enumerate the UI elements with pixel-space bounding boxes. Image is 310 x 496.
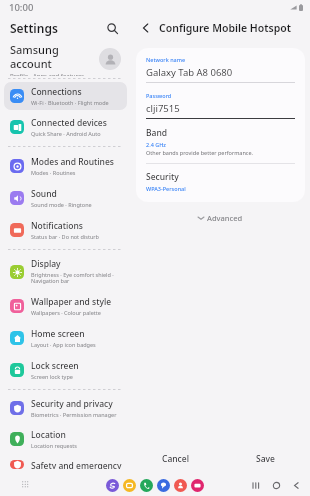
staticText: Modes and Routines: [31, 156, 114, 168]
staticText: Configure Mobile Hotspot: [159, 21, 292, 35]
staticText: Settings: [10, 20, 58, 36]
button[interactable]: Wallpaper and style: [4, 291, 127, 321]
staticText: Layout · App icon badges: [31, 341, 96, 348]
button[interactable]: camera: [191, 479, 204, 492]
button[interactable]: phone: [140, 479, 153, 492]
button[interactable]: files: [123, 479, 136, 492]
staticText: Location: [31, 429, 66, 441]
staticText: Safety and emergency: [31, 460, 122, 469]
button[interactable]: Search: [103, 19, 121, 37]
staticText: Home screen: [31, 328, 85, 340]
staticText: Other bands provide better performance.: [146, 149, 254, 156]
staticText: Wi-Fi · Bluetooth · Flight mode: [31, 99, 109, 106]
staticText: Brightness · Eye comfort shield · Naviga…: [31, 271, 123, 285]
button[interactable]: Back: [290, 479, 302, 491]
staticText: Quick Share · Android Auto: [31, 130, 101, 137]
staticText: Connected devices: [31, 117, 107, 129]
button[interactable]: Back: [137, 19, 155, 37]
button[interactable]: Security and privacy: [4, 394, 127, 422]
staticText: WPA3-Personal: [146, 185, 186, 192]
staticText: Location requests: [31, 442, 77, 449]
button[interactable]: internet: [106, 479, 119, 492]
button[interactable]: Advanced: [131, 210, 310, 226]
staticText: 10:00: [9, 1, 34, 14]
staticText: Wallpaper and style: [31, 296, 112, 308]
staticText: Galaxy Tab A8 0680: [146, 66, 233, 79]
staticText: Security and privacy: [31, 398, 113, 410]
button[interactable]: Sound: [4, 183, 127, 213]
staticText: Wallpapers · Colour palette: [31, 309, 101, 316]
button[interactable]: Cancel: [131, 444, 220, 474]
staticText: Cancel: [162, 453, 189, 465]
staticText: Save: [256, 453, 275, 465]
button[interactable]: Modes and Routines: [4, 151, 127, 181]
button[interactable]: Notifications: [4, 215, 127, 245]
staticText: Notifications: [31, 220, 83, 232]
staticText: Sound mode · Ringtone: [31, 201, 92, 208]
staticText: Display: [31, 258, 61, 270]
button[interactable]: Band: [146, 127, 295, 156]
staticText: Password: [146, 92, 172, 99]
staticText: Lock screen: [31, 360, 79, 372]
staticText: Sound: [31, 188, 57, 200]
staticText: Advanced: [207, 213, 243, 223]
button[interactable]: Lock screen: [4, 355, 127, 385]
staticText: Connections: [31, 86, 82, 98]
button[interactable]: Recents: [250, 479, 262, 491]
button[interactable]: Home screen: [4, 323, 127, 353]
staticText: Screen lock type: [31, 373, 73, 380]
button[interactable]: Home: [270, 479, 282, 491]
button[interactable]: Security: [146, 171, 295, 192]
button[interactable]: Display: [4, 254, 127, 289]
staticText: Network name: [146, 56, 186, 63]
staticText: Biometrics · Permission manager: [31, 411, 117, 418]
staticText: clji7515: [146, 102, 180, 115]
button[interactable]: Apps: [18, 477, 34, 493]
button[interactable]: Save: [220, 444, 310, 474]
button[interactable]: messages: [157, 479, 170, 492]
staticText: Profile · Apps and features: [10, 72, 85, 76]
button[interactable]: Connected devices: [4, 112, 127, 142]
staticText: Security: [146, 171, 179, 183]
staticText: 2.4 GHz: [146, 141, 166, 148]
button[interactable]: Connections: [4, 82, 127, 110]
staticText: Status bar · Do not disturb: [31, 233, 100, 240]
button[interactable]: contacts: [174, 479, 187, 492]
button[interactable]: Samsung account: [0, 42, 131, 76]
button[interactable]: Location: [4, 424, 127, 454]
staticText: Modes · Routines: [31, 169, 76, 176]
button[interactable]: Safety and emergency: [4, 456, 127, 473]
staticText: Band: [146, 127, 168, 139]
staticText: Samsung account: [10, 42, 99, 71]
